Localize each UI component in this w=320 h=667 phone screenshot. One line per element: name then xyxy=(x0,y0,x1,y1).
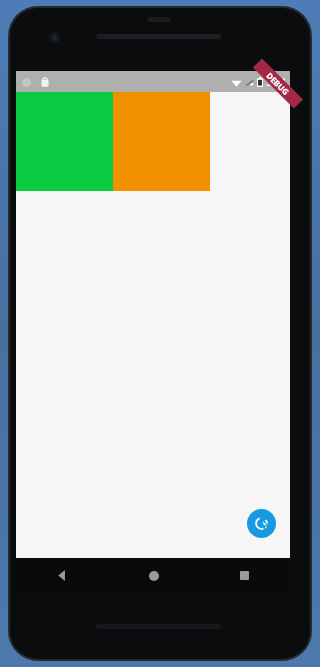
button[interactable]: Home xyxy=(108,558,199,593)
button[interactable]: Refresh xyxy=(247,509,276,538)
button[interactable]: Back xyxy=(16,558,108,593)
button[interactable]: Recents xyxy=(199,558,290,593)
staticText: DEBUG xyxy=(264,70,292,97)
staticText: 3:54 xyxy=(266,75,286,89)
